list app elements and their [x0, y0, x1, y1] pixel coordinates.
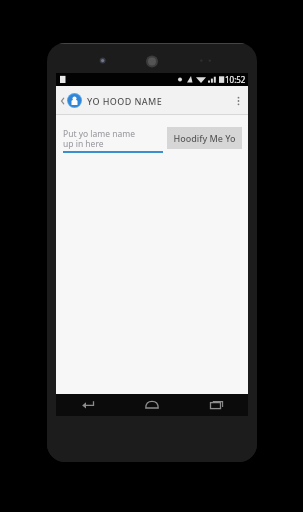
button[interactable]: Hoodify Me Yo [167, 127, 242, 149]
button[interactable]: Recent apps [184, 394, 248, 416]
button[interactable]: More options [231, 86, 245, 115]
button[interactable]: Home [120, 394, 184, 416]
staticText: Hoodify Me Yo [173, 132, 236, 144]
button[interactable]: Back [56, 394, 120, 416]
staticText: Put yo lame name up in here [63, 128, 136, 149]
button[interactable]: Put yo lame name up in here [63, 127, 163, 153]
staticText: 10:52 [225, 74, 246, 85]
staticText: YO HOOD NAME [87, 95, 163, 107]
